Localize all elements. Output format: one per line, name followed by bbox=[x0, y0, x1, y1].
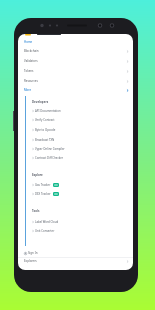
staticText: Tokens bbox=[24, 69, 34, 73]
staticText: Label Word Cloud bbox=[35, 220, 59, 224]
staticText: More bbox=[24, 88, 32, 92]
button[interactable]: Home bbox=[18, 37, 133, 47]
staticText: Validators bbox=[24, 59, 38, 63]
staticText: API Documentation bbox=[35, 109, 61, 113]
button[interactable]: Contract Diff Checker bbox=[18, 153, 133, 163]
staticText: Gas Tracker bbox=[35, 183, 51, 187]
button[interactable]: Sign In bbox=[18, 248, 133, 258]
button[interactable]: Gas Tracker bbox=[18, 180, 133, 190]
button[interactable]: Byte to Opcode bbox=[18, 125, 133, 135]
staticText: Home bbox=[24, 40, 33, 44]
button[interactable]: DEX Tracker bbox=[18, 189, 133, 199]
staticText: Byte to Opcode bbox=[35, 128, 56, 132]
button[interactable]: More bbox=[18, 85, 133, 95]
button[interactable]: API Documentation bbox=[18, 106, 133, 116]
button[interactable]: Tokens bbox=[18, 66, 133, 76]
staticText: Contract Diff Checker bbox=[35, 156, 64, 160]
button[interactable]: Verify Contract bbox=[18, 115, 133, 125]
staticText: Broadcast TXN bbox=[35, 138, 55, 142]
staticText: Explorers bbox=[24, 259, 37, 263]
button[interactable]: Blockchain bbox=[18, 46, 133, 56]
button[interactable]: Explorers bbox=[18, 256, 133, 266]
staticText: Verify Contract bbox=[35, 118, 55, 122]
staticText: Unit Converter bbox=[35, 229, 55, 233]
staticText: Developers bbox=[32, 100, 49, 104]
staticText: Vyper Online Compiler bbox=[35, 147, 65, 151]
staticText: Blockchain bbox=[24, 49, 39, 53]
button[interactable]: Unit Converter bbox=[18, 226, 133, 236]
staticText: Tools bbox=[32, 209, 40, 213]
button[interactable]: Resources bbox=[18, 76, 133, 86]
staticText: Resources bbox=[24, 79, 38, 83]
button[interactable]: Validators bbox=[18, 56, 133, 66]
button[interactable]: Broadcast TXN bbox=[18, 135, 133, 145]
button[interactable]: Label Word Cloud bbox=[18, 217, 133, 227]
staticText: Explore bbox=[32, 173, 43, 177]
staticText: Sign In bbox=[28, 251, 38, 255]
staticText: DEX Tracker bbox=[35, 192, 51, 196]
button[interactable]: Vyper Online Compiler bbox=[18, 144, 133, 154]
